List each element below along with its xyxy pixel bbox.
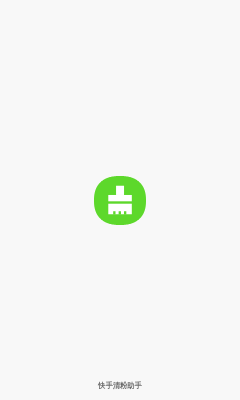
staticText: 快手清粉助手	[0, 381, 240, 390]
button[interactable]: App icon	[94, 176, 146, 225]
